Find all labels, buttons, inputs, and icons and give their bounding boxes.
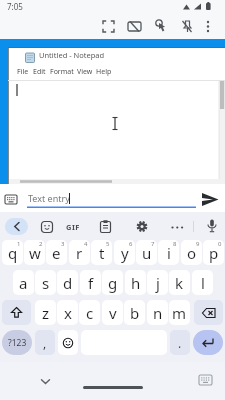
button[interactable]: f xyxy=(80,270,101,295)
button[interactable] xyxy=(83,386,143,389)
staticText: Text entry xyxy=(28,192,70,204)
staticText: 0 xyxy=(218,240,222,248)
staticText: Format xyxy=(50,67,74,77)
staticText: 6 xyxy=(129,240,133,248)
button[interactable]: k xyxy=(169,270,190,295)
staticText: i xyxy=(167,243,171,263)
button[interactable] xyxy=(128,21,141,32)
staticText: e xyxy=(52,243,61,263)
staticText: m xyxy=(172,303,187,323)
button[interactable] xyxy=(154,19,166,33)
staticText: d xyxy=(63,273,73,293)
button[interactable]: y xyxy=(114,240,135,265)
button[interactable]: c xyxy=(79,300,100,325)
button[interactable] xyxy=(136,220,148,233)
staticText: h xyxy=(131,273,141,293)
button[interactable] xyxy=(100,220,111,233)
staticText: File xyxy=(17,67,29,77)
button[interactable] xyxy=(199,375,212,385)
staticText: v xyxy=(109,303,117,323)
staticText: Untitled - Notepad xyxy=(39,50,105,60)
staticText: u xyxy=(142,243,152,263)
staticText: 3 xyxy=(61,240,65,248)
button[interactable]: l xyxy=(192,270,213,295)
staticText: l xyxy=(201,273,205,293)
button[interactable]: g xyxy=(102,270,123,295)
button[interactable] xyxy=(5,218,28,235)
staticText: c xyxy=(86,303,94,323)
button[interactable]: t xyxy=(91,240,112,265)
staticText: f xyxy=(88,273,94,293)
staticText: GIF xyxy=(66,222,80,232)
button[interactable] xyxy=(193,330,223,355)
button[interactable]: w xyxy=(24,240,45,265)
button[interactable]: n xyxy=(147,300,168,325)
staticText: s xyxy=(42,273,50,293)
staticText: View xyxy=(77,67,93,77)
button[interactable]: ?123 xyxy=(2,330,32,355)
staticText: r xyxy=(76,243,83,263)
staticText: x xyxy=(64,303,72,323)
staticText: ?123 xyxy=(8,337,27,349)
staticText: y xyxy=(121,243,129,263)
button[interactable]: o xyxy=(181,240,202,265)
button[interactable] xyxy=(41,221,53,233)
button[interactable]: Text entry xyxy=(0,188,225,212)
button[interactable]: e xyxy=(46,240,67,265)
staticText: j xyxy=(156,273,160,293)
button[interactable]: d xyxy=(57,270,78,295)
button[interactable]: r xyxy=(69,240,90,265)
button[interactable]: b xyxy=(124,300,145,325)
button[interactable]: z xyxy=(35,300,56,325)
button[interactable]: a xyxy=(13,270,34,295)
staticText: z xyxy=(42,303,50,323)
button[interactable]: q xyxy=(2,240,23,265)
button[interactable]: x xyxy=(57,300,78,325)
button[interactable] xyxy=(181,20,193,33)
staticText: 7:05 xyxy=(7,1,23,12)
button[interactable] xyxy=(2,300,31,325)
button[interactable]: s xyxy=(35,270,56,295)
staticText: b xyxy=(130,303,140,323)
button[interactable] xyxy=(171,226,184,229)
staticText: k xyxy=(175,273,184,293)
button[interactable]: v xyxy=(102,300,123,325)
staticText: a xyxy=(19,273,28,293)
button[interactable] xyxy=(103,21,114,32)
staticText: 8 xyxy=(173,240,177,248)
button[interactable]: i xyxy=(158,240,179,265)
staticText: 2 xyxy=(39,240,43,248)
staticText: t xyxy=(99,243,105,263)
staticText: g xyxy=(108,273,118,293)
staticText: p xyxy=(209,243,219,263)
button[interactable]: p xyxy=(203,240,224,265)
button[interactable] xyxy=(207,219,217,234)
button[interactable] xyxy=(202,20,214,33)
button[interactable]: . xyxy=(170,330,190,355)
button[interactable]: u xyxy=(136,240,157,265)
button[interactable] xyxy=(41,379,50,385)
button[interactable]: h xyxy=(125,270,146,295)
button[interactable]: j xyxy=(147,270,168,295)
staticText: n xyxy=(153,303,163,323)
staticText: q xyxy=(8,243,18,263)
button[interactable] xyxy=(58,330,78,355)
staticText: 7 xyxy=(151,240,155,248)
staticText: o xyxy=(187,243,197,263)
staticText: . xyxy=(178,335,182,351)
button[interactable]: , xyxy=(35,330,55,355)
staticText: Help xyxy=(96,67,112,77)
button[interactable] xyxy=(202,193,219,206)
staticText: 4 xyxy=(84,240,88,248)
button[interactable]: m xyxy=(169,300,190,325)
staticText: w xyxy=(29,243,41,263)
staticText: Edit xyxy=(33,67,46,77)
staticText: 9 xyxy=(196,240,200,248)
staticText: 5 xyxy=(106,240,110,248)
staticText: 1 xyxy=(17,240,21,248)
button[interactable] xyxy=(194,300,223,325)
staticText: , xyxy=(43,335,47,351)
